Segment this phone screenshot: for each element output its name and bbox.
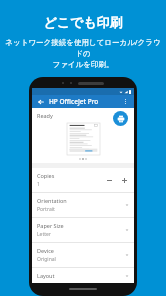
- button[interactable]: Back: [36, 97, 45, 106]
- staticText: Layout: [37, 272, 55, 279]
- button[interactable]: Orientation: [32, 193, 134, 217]
- button[interactable]: Increase copies: [119, 175, 129, 185]
- button[interactable]: Layout: [32, 268, 134, 283]
- staticText: ネットワーク接続を使用してローカル/クラウドの ファイルを印刷。: [5, 37, 161, 69]
- staticText: Ready: [37, 112, 53, 119]
- staticText: Copies: [37, 172, 55, 179]
- button[interactable]: More options: [121, 97, 130, 106]
- button[interactable]: Device: [32, 243, 134, 267]
- button[interactable]: Decrease copies: [104, 175, 114, 185]
- staticText: Device: [37, 247, 54, 254]
- staticText: どこでも印刷: [43, 14, 123, 30]
- button[interactable]: Paper Size: [32, 218, 134, 242]
- staticText: Portrait: [37, 206, 55, 213]
- staticText: Paper Size: [37, 222, 64, 229]
- staticText: HP OfficeJet Pro: [49, 97, 99, 106]
- staticText: Original: [37, 256, 56, 263]
- button[interactable]: Copies: [32, 168, 134, 192]
- staticText: 1: [37, 181, 40, 188]
- staticText: Orientation: [37, 197, 67, 204]
- button[interactable]: Print: [113, 111, 128, 126]
- staticText: Letter: [37, 231, 51, 238]
